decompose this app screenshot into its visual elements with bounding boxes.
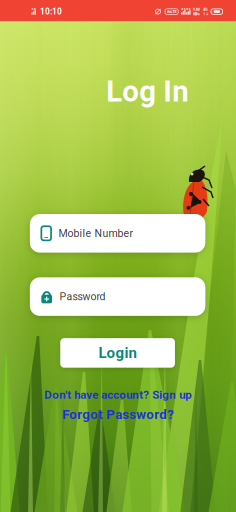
staticText: Don't have account? Sign up xyxy=(44,388,192,402)
button[interactable]: Mobile Number xyxy=(30,214,205,253)
staticText: 9.80 xyxy=(193,7,200,12)
button[interactable]: Don't have account? Sign up xyxy=(44,388,192,402)
staticText: Login xyxy=(99,344,137,362)
button[interactable]: Password xyxy=(30,277,205,316)
staticText: Log In xyxy=(106,74,188,109)
button[interactable]: Login xyxy=(60,338,175,368)
staticText: 4G xyxy=(203,7,208,12)
staticText: Password xyxy=(59,290,105,303)
staticText: Mobile Number xyxy=(58,227,133,239)
button[interactable]: Forgot Password? xyxy=(62,407,174,422)
staticText: 10:10 xyxy=(40,7,62,16)
staticText: KB/s xyxy=(193,12,200,16)
staticText: Forgot Password? xyxy=(62,407,174,422)
staticText: ↑↓ xyxy=(202,12,208,16)
staticText: VoLTE xyxy=(167,9,177,14)
